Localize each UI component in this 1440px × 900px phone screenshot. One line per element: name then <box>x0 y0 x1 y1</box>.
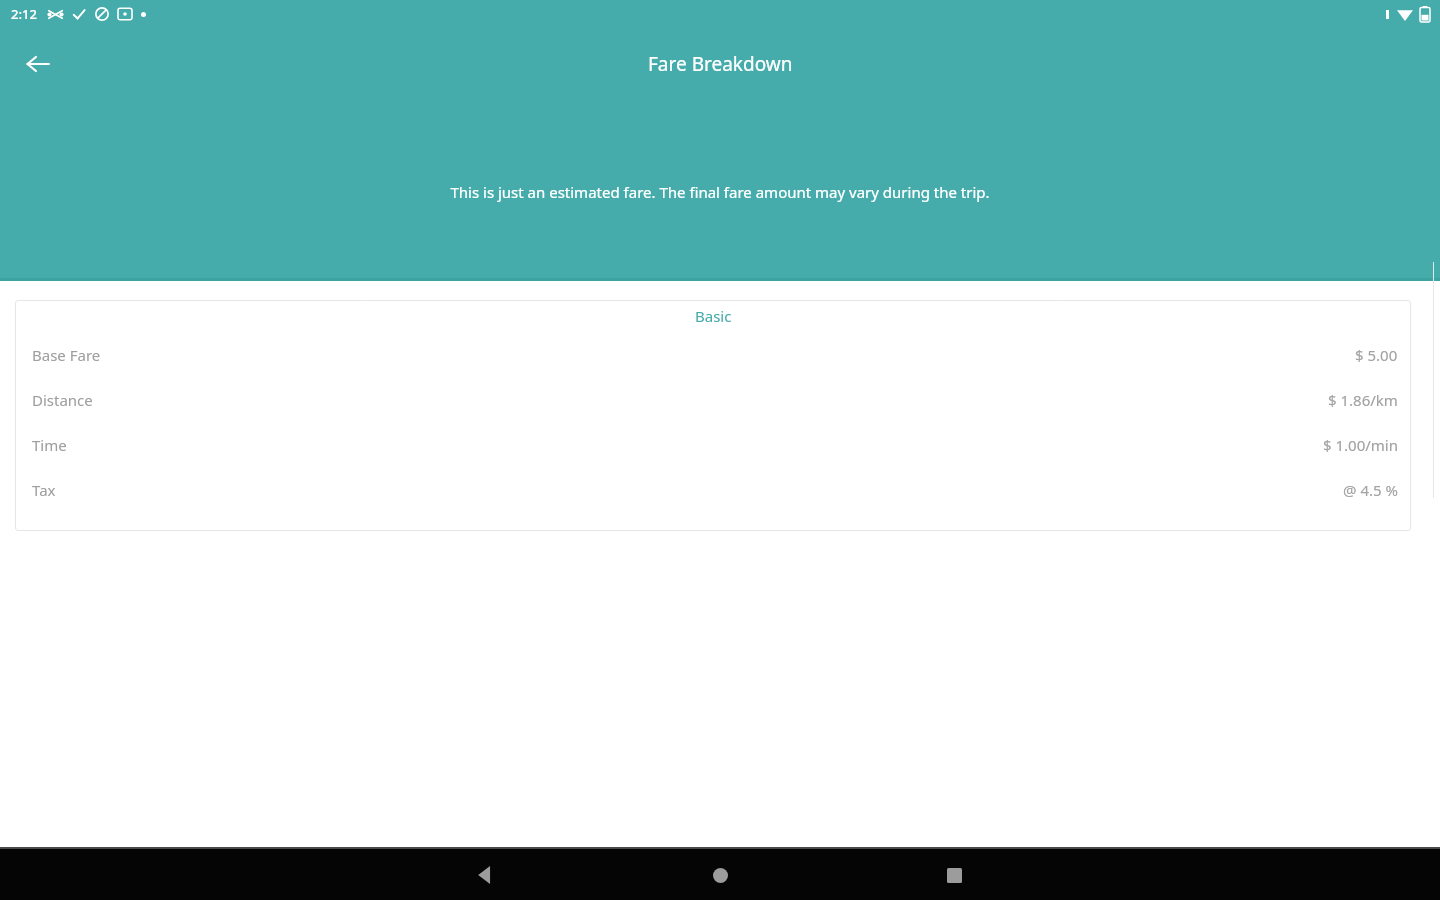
button[interactable]: Time <box>15 422 1411 467</box>
staticText: This is just an estimated fare. The fina… <box>40 182 1400 202</box>
staticText: $ 1.86/km <box>1328 390 1398 410</box>
staticText: Fare Breakdown <box>648 51 793 77</box>
staticText: 2:12 <box>11 5 37 23</box>
staticText: $ 5.00 <box>1355 345 1398 365</box>
staticText: Time <box>32 435 67 455</box>
button[interactable]: Back <box>14 40 62 88</box>
staticText: Basic <box>695 306 732 326</box>
staticText: Tax <box>32 480 56 500</box>
button[interactable]: Base Fare <box>15 332 1411 377</box>
staticText: $ 1.00/min <box>1323 435 1398 455</box>
staticText: Distance <box>32 390 93 410</box>
button[interactable]: Back <box>461 851 509 899</box>
staticText: Base Fare <box>32 345 101 365</box>
button[interactable]: Recent apps <box>930 851 978 899</box>
staticText: @ 4.5 % <box>1343 480 1398 500</box>
button[interactable]: Distance <box>15 377 1411 422</box>
button[interactable]: Tax <box>15 467 1411 512</box>
button[interactable]: Home <box>696 851 744 899</box>
